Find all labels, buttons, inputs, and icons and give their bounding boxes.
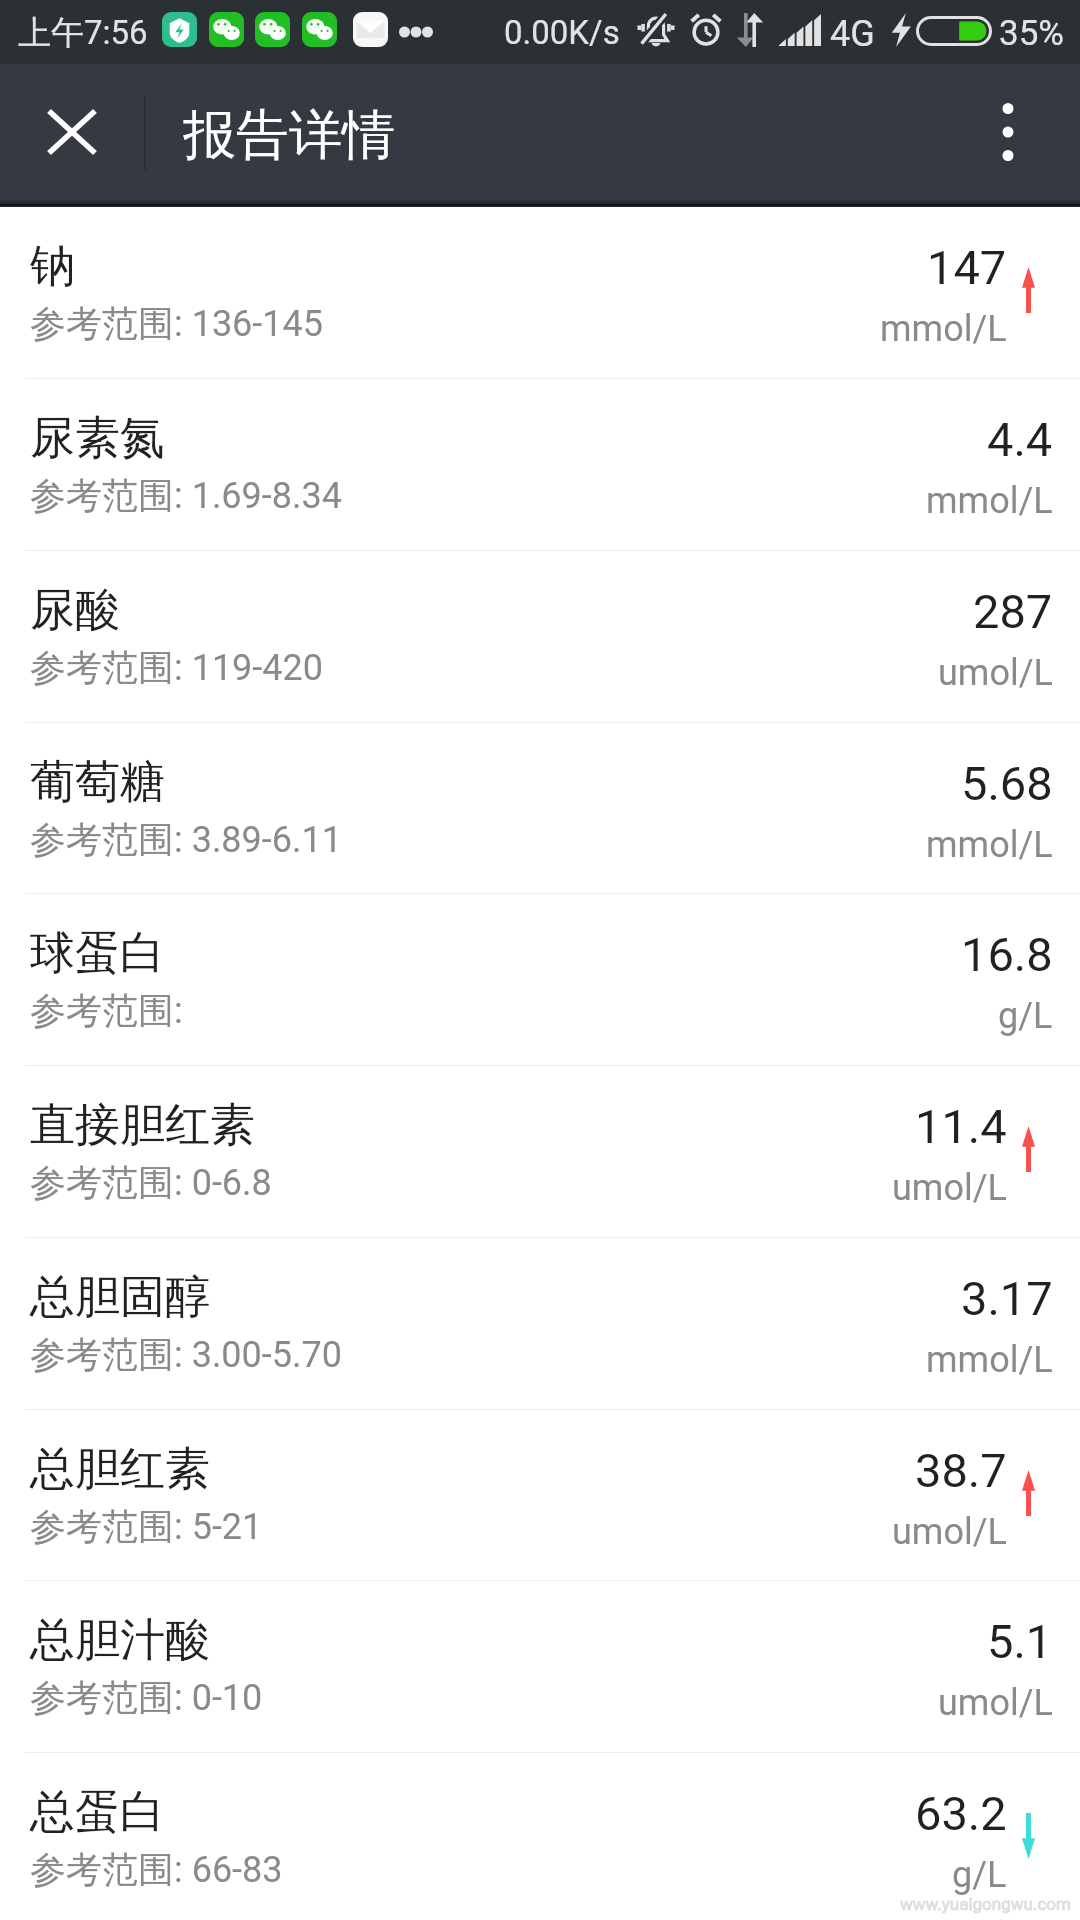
- button[interactable]: 直接胆红素: [0, 1066, 1080, 1237]
- staticText: 总胆汁酸: [30, 1612, 210, 1669]
- staticText: 参考范围: 5-21: [30, 1504, 263, 1549]
- staticText: mmol/L: [880, 308, 1007, 350]
- button[interactable]: 尿素氮: [0, 379, 1080, 550]
- button[interactable]: Close: [30, 90, 114, 174]
- button[interactable]: 总胆汁酸: [0, 1581, 1080, 1752]
- staticText: g/L: [998, 995, 1053, 1037]
- staticText: 总胆红素: [30, 1441, 210, 1498]
- staticText: 参考范围: 1.69-8.34: [30, 473, 342, 518]
- staticText: mmol/L: [926, 824, 1053, 866]
- staticText: 5.1: [987, 1614, 1053, 1669]
- staticText: 4.4: [987, 412, 1053, 467]
- staticText: 38.7: [915, 1443, 1007, 1498]
- staticText: 总胆固醇: [30, 1269, 210, 1326]
- staticText: 总蛋白: [30, 1784, 165, 1841]
- staticText: g/L: [952, 1854, 1007, 1896]
- staticText: 5.68: [961, 756, 1053, 811]
- staticText: 4G: [830, 13, 875, 55]
- staticText: 35%: [999, 13, 1064, 54]
- button[interactable]: More options: [968, 92, 1048, 172]
- button[interactable]: 尿酸: [0, 551, 1080, 722]
- staticText: 参考范围: 0-6.8: [30, 1160, 272, 1205]
- staticText: 尿酸: [30, 582, 120, 639]
- staticText: 球蛋白: [30, 925, 165, 982]
- staticText: mmol/L: [926, 1339, 1053, 1381]
- staticText: 参考范围: 119-420: [30, 645, 323, 690]
- button[interactable]: 总胆红素: [0, 1410, 1080, 1580]
- button[interactable]: 总蛋白: [0, 1753, 1080, 1920]
- staticText: umol/L: [892, 1167, 1007, 1209]
- staticText: 147: [927, 240, 1007, 295]
- staticText: www.yuaigongwu.com: [900, 1894, 1071, 1914]
- staticText: 63.2: [915, 1786, 1007, 1841]
- button[interactable]: 总胆固醇: [0, 1238, 1080, 1409]
- staticText: 直接胆红素: [30, 1097, 255, 1154]
- staticText: umol/L: [892, 1511, 1007, 1553]
- staticText: 上午7:56: [18, 12, 148, 54]
- staticText: 钠: [30, 238, 75, 295]
- staticText: 287: [973, 584, 1053, 639]
- staticText: 11.4: [915, 1099, 1007, 1154]
- staticText: 参考范围: 3.89-6.11: [30, 817, 342, 862]
- staticText: mmol/L: [926, 480, 1053, 522]
- staticText: 0.00K/s: [504, 13, 620, 52]
- staticText: umol/L: [938, 1682, 1053, 1724]
- staticText: 参考范围: 0-10: [30, 1675, 263, 1720]
- staticText: 报告详情: [183, 102, 395, 169]
- staticText: 3.17: [961, 1271, 1053, 1326]
- staticText: 尿素氮: [30, 410, 165, 467]
- staticText: 16.8: [961, 927, 1053, 982]
- staticText: 参考范围:: [30, 988, 183, 1033]
- button[interactable]: 球蛋白: [0, 894, 1080, 1065]
- staticText: umol/L: [938, 652, 1053, 694]
- button[interactable]: 葡萄糖: [0, 723, 1080, 893]
- staticText: 葡萄糖: [30, 754, 165, 811]
- staticText: 参考范围: 3.00-5.70: [30, 1332, 342, 1377]
- staticText: 参考范围: 66-83: [30, 1847, 283, 1892]
- button[interactable]: 钠: [0, 207, 1080, 378]
- staticText: 参考范围: 136-145: [30, 301, 323, 346]
